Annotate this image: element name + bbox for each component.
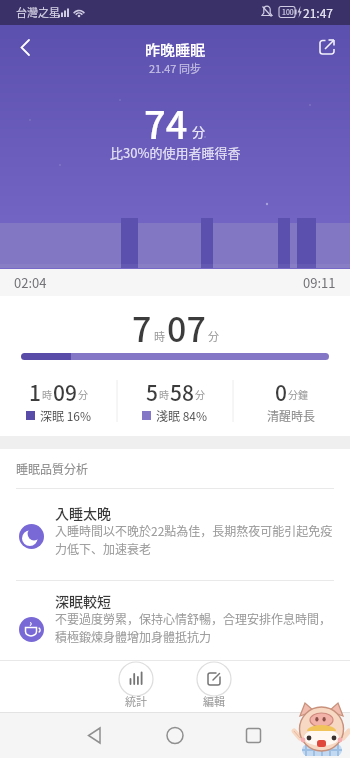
staticText: 時 [159,387,169,401]
staticText: 21:47 [303,4,333,21]
button[interactable] [106,660,166,712]
button[interactable] [10,496,344,566]
staticText: 0 [275,377,287,407]
staticText: 淺眠 84% [156,407,208,424]
button[interactable] [314,34,340,60]
staticText: 74 [144,95,188,150]
staticText: 編輯 [203,693,225,709]
staticText: 分鐘 [288,387,308,401]
button[interactable] [184,660,244,712]
staticText: 比30%的使用者睡得香 [110,143,241,161]
staticText: 21.47 同步 [149,60,201,75]
staticText: 分 [192,122,206,141]
staticText: 09:11 [303,273,336,292]
button[interactable]: 5 [117,375,233,409]
button[interactable] [60,712,130,758]
staticText: 深眠 16% [40,407,92,424]
staticText: 58 [170,377,194,407]
staticText: 不要過度勞累，保持心情舒暢，合理安排作息時間，積極鍛煉身體增加身體抵抗力 [55,610,338,646]
button[interactable] [220,712,290,758]
button[interactable] [6,34,40,62]
staticText: 5 [146,377,158,407]
staticText: 統計 [125,693,147,709]
staticText: 入睡時間以不晚於22點為佳，長期熬夜可能引起免疫力低下、加速衰老 [55,522,338,558]
button[interactable] [10,584,344,654]
button[interactable] [140,712,210,758]
staticText: 睡眠品質分析 [16,460,89,477]
staticText: 時 [42,387,52,401]
staticText: 分 [78,387,88,401]
staticText: 昨晚睡眠 [145,39,206,57]
staticText: 分 [195,387,205,401]
staticText: 清醒時長 [267,407,316,424]
staticText: 1 [29,377,41,407]
staticText: 深眠較短 [55,591,111,609]
staticText: 分 [208,328,219,344]
staticText: 入睡太晚 [55,503,111,521]
staticText: 02:04 [14,273,47,292]
button[interactable]: 0 [233,375,350,409]
staticText: 台灣之星 [16,4,60,20]
staticText: 09 [53,377,77,407]
staticText: 時 [154,328,165,344]
button[interactable]: 1 [0,375,117,409]
staticText: 07 [167,303,206,352]
staticText: 7 [132,303,152,352]
staticText: 100 [282,7,294,17]
